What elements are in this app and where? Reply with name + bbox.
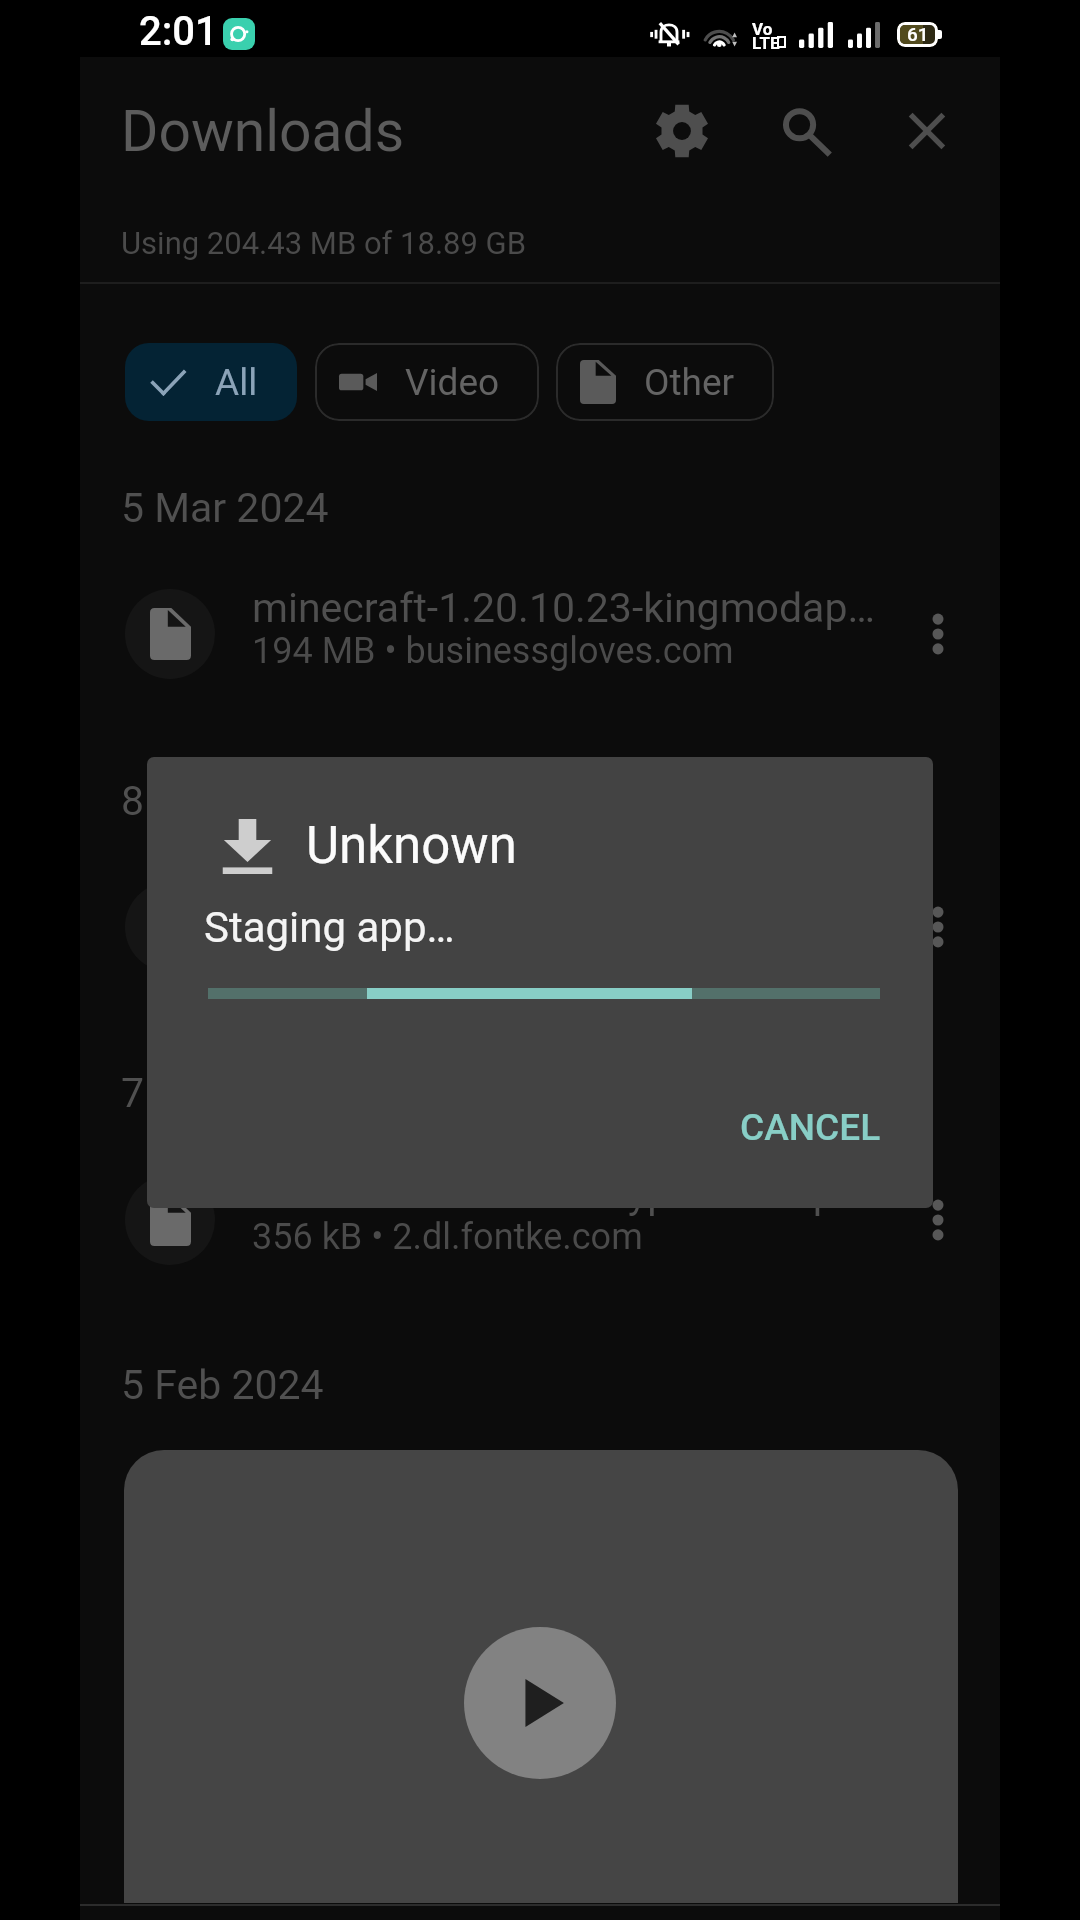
staticText: 5 Mar 2024 xyxy=(121,484,329,532)
staticText: All xyxy=(215,361,258,404)
button[interactable]: All xyxy=(125,343,297,421)
button[interactable]: apk-file-download-here-2.apk xyxy=(80,862,1000,992)
staticText: 12.4 MB • apkmirror.com xyxy=(252,923,880,965)
staticText: Vo xyxy=(752,19,773,39)
staticText: Other xyxy=(644,361,735,404)
staticText: LTE xyxy=(752,33,780,53)
staticText: SourceHanSerifCN-Typeface.zip xyxy=(252,1170,880,1218)
button[interactable]: More options xyxy=(893,1175,983,1265)
staticText: Staging app… xyxy=(204,903,455,952)
staticText: apk-file-download-here-2.apk xyxy=(252,877,880,925)
staticText: Unknown xyxy=(306,816,517,876)
button[interactable]: Video xyxy=(315,343,539,421)
staticText: 194 MB • businessgloves.com xyxy=(252,630,880,672)
button[interactable]: CANCEL xyxy=(720,1077,900,1177)
staticText: 2:01 xyxy=(139,8,218,55)
button[interactable]: SourceHanSerifCN-Typeface.zip xyxy=(80,1155,1000,1285)
button[interactable]: More options xyxy=(893,882,983,972)
staticText: minecraft-1.20.10.23-kingmodap… xyxy=(252,584,880,632)
button[interactable]: More options xyxy=(893,589,983,679)
staticText: Downloads xyxy=(121,98,405,165)
button[interactable]: Search xyxy=(755,79,859,183)
button[interactable]: Settings xyxy=(630,79,734,183)
button[interactable]: Play video xyxy=(124,1450,958,1903)
staticText: 356 kB • 2.dl.fontke.com xyxy=(252,1216,880,1258)
staticText: CANCEL xyxy=(740,1106,881,1149)
staticText: 7 Mar 2024 xyxy=(121,1069,329,1117)
staticText: Using 204.43 MB of 18.89 GB xyxy=(121,225,527,261)
button[interactable]: Other xyxy=(556,343,774,421)
staticText: 61 xyxy=(907,23,929,45)
staticText: 8 Mar 2024 xyxy=(121,777,329,825)
button[interactable]: Close xyxy=(875,79,979,183)
staticText: Video xyxy=(405,361,500,404)
button[interactable]: minecraft-1.20.10.23-kingmodap… xyxy=(80,569,1000,699)
staticText: 5 Feb 2024 xyxy=(121,1361,324,1409)
